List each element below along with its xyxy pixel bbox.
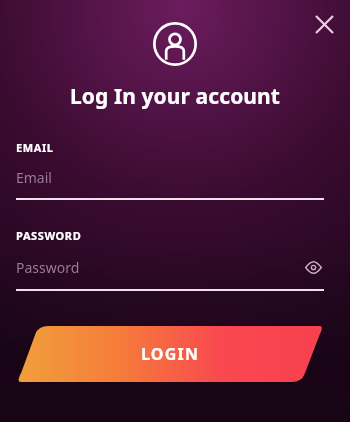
staticText: PASSWORD xyxy=(16,228,82,243)
staticText: Email xyxy=(16,168,324,187)
button[interactable]: Password xyxy=(16,256,324,291)
button[interactable]: Close xyxy=(304,4,344,44)
staticText: Password xyxy=(16,258,302,277)
button[interactable]: Show password xyxy=(302,256,324,278)
button[interactable]: LOGIN xyxy=(16,326,324,382)
button[interactable]: Email xyxy=(16,168,324,200)
staticText: Log In your account xyxy=(0,82,350,111)
staticText: EMAIL xyxy=(16,140,54,155)
staticText: LOGIN xyxy=(141,343,200,365)
